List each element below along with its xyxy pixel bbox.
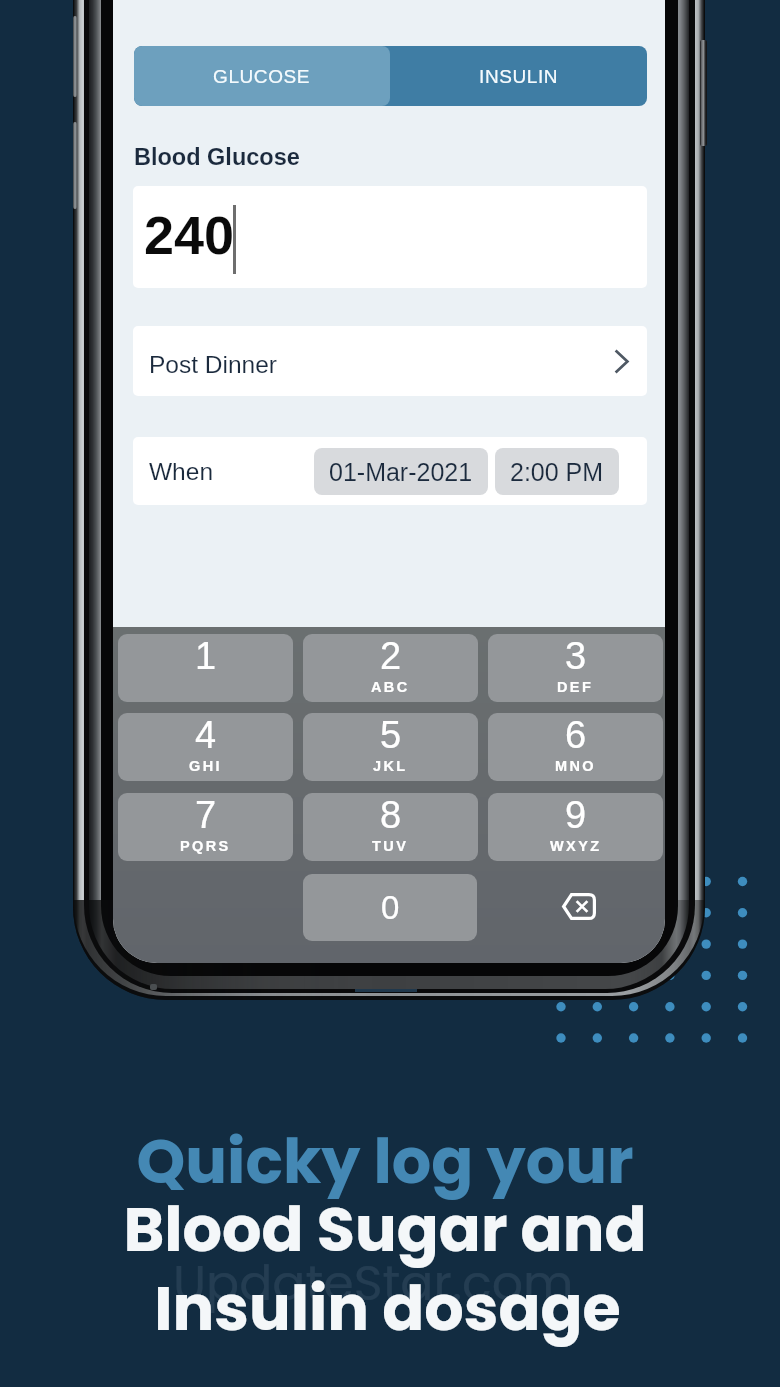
staticText: GHI [189,758,222,774]
staticText: Blood Glucose [134,144,300,170]
staticText: 9 [565,794,587,836]
button[interactable]: 240 [133,186,647,288]
staticText: 0 [381,889,400,926]
staticText: TUV [372,838,409,854]
staticText: DEF [557,679,594,695]
staticText: 2 [380,635,402,677]
staticText: 5 [380,714,402,756]
staticText: 6 [565,714,587,756]
button[interactable]: 9 [488,793,663,861]
button[interactable]: Post Dinner [133,326,647,396]
staticText: 4 [195,714,217,756]
staticText: Blood Sugar and [123,1186,647,1273]
button[interactable]: 4 [118,713,293,781]
staticText: 240 [144,205,235,265]
button[interactable]: 2:00 PM [495,448,619,495]
staticText: Quicky log your [136,1118,634,1205]
staticText: GLUCOSE [213,66,311,87]
staticText: WXYZ [550,838,602,854]
button[interactable]: 01-Mar-2021 [314,448,488,495]
staticText: INSULIN [479,66,559,87]
staticText: Insulin dosage [154,1265,621,1352]
staticText: MNO [555,758,597,774]
button[interactable]: 8 [303,793,478,861]
staticText: JKL [373,758,408,774]
staticText: PQRS [180,838,231,854]
button[interactable]: Backspace [488,873,663,941]
button[interactable]: 6 [488,713,663,781]
staticText: ABC [371,679,410,695]
staticText: 1 [195,635,217,677]
staticText: 3 [565,635,587,677]
staticText: 7 [195,794,217,836]
staticText: 2:00 PM [510,458,604,486]
button[interactable]: 7 [118,793,293,861]
button[interactable]: INSULIN [390,46,647,106]
staticText: 01-Mar-2021 [329,458,473,486]
button[interactable]: 1 [118,634,293,702]
staticText: When [149,458,214,485]
button[interactable]: 0 [303,874,477,941]
button[interactable]: GLUCOSE [134,46,390,106]
staticText: UpdateStar.com [173,1249,574,1318]
staticText: Post Dinner [149,351,278,378]
button[interactable]: 3 [488,634,663,702]
staticText: 8 [380,794,402,836]
button[interactable]: 2 [303,634,478,702]
button[interactable]: 5 [303,713,478,781]
